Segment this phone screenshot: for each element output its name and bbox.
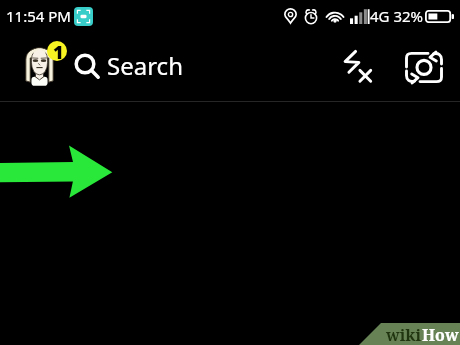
staticText: 11:54 PM [6,6,71,26]
button[interactable]: Flash off [340,44,376,86]
staticText: 1 [53,41,64,60]
button[interactable]: Search [74,43,183,87]
staticText: How [422,324,459,345]
button[interactable]: Flip camera [401,45,447,85]
staticText: Search [107,49,183,82]
button[interactable]: Profile [22,44,58,88]
staticText: wiki [386,324,422,345]
staticText: 4G 32% [370,6,424,26]
